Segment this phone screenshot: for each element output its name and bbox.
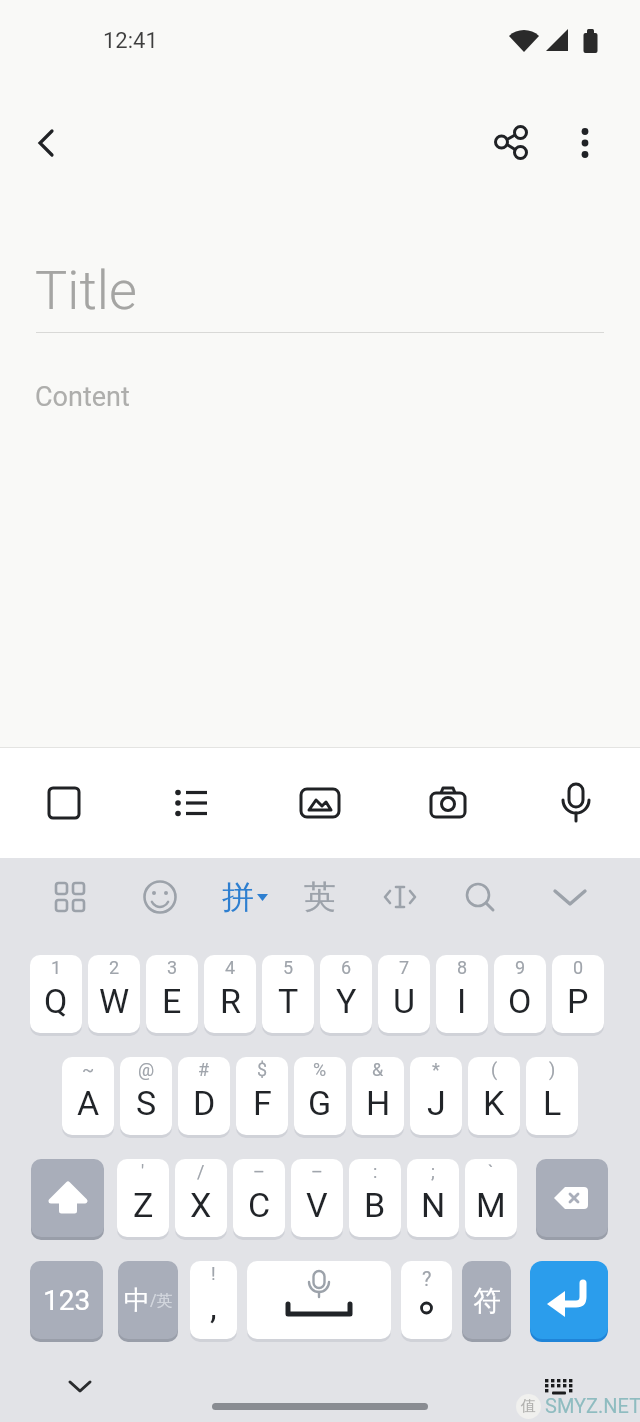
button[interactable]: L xyxy=(526,1057,578,1135)
button[interactable]: W xyxy=(88,955,140,1033)
staticText: Q xyxy=(44,981,68,1021)
staticText: 0 xyxy=(573,957,584,978)
button[interactable] xyxy=(247,1261,391,1339)
button[interactable]: E xyxy=(146,955,198,1033)
button[interactable] xyxy=(420,775,476,831)
button[interactable]: 123 xyxy=(30,1261,103,1339)
staticText: G xyxy=(308,1083,332,1123)
button[interactable]: G xyxy=(294,1057,346,1135)
staticText: P xyxy=(567,981,589,1021)
button[interactable] xyxy=(18,119,66,167)
button[interactable]: U xyxy=(378,955,430,1033)
staticText: 5 xyxy=(283,957,294,978)
staticText: T xyxy=(278,981,299,1021)
button[interactable]: 中 xyxy=(118,1261,178,1339)
button[interactable]: M xyxy=(465,1159,517,1237)
button[interactable] xyxy=(487,119,535,167)
button[interactable]: H xyxy=(352,1057,404,1135)
button[interactable]: ? xyxy=(401,1261,452,1339)
button[interactable]: I xyxy=(436,955,488,1033)
button[interactable] xyxy=(536,1159,608,1237)
button[interactable]: X xyxy=(175,1159,227,1237)
staticText: / xyxy=(197,1161,205,1182)
button[interactable] xyxy=(535,1367,583,1407)
staticText: ' xyxy=(141,1161,145,1182)
staticText: F xyxy=(253,1083,272,1123)
button[interactable]: , xyxy=(190,1261,237,1339)
button[interactable] xyxy=(46,873,94,921)
staticText: V xyxy=(306,1185,328,1225)
button[interactable]: C xyxy=(233,1159,285,1237)
staticText: ! xyxy=(211,1263,216,1284)
staticText: 中 xyxy=(124,1284,150,1317)
staticText: Z xyxy=(133,1185,154,1225)
staticText: 6 xyxy=(341,957,352,978)
button[interactable] xyxy=(548,775,604,831)
button[interactable] xyxy=(56,1362,104,1410)
staticText: Content xyxy=(35,381,130,413)
button[interactable]: O xyxy=(494,955,546,1033)
button[interactable]: Z xyxy=(117,1159,169,1237)
staticText: , xyxy=(210,1287,217,1327)
staticText: L xyxy=(543,1083,562,1123)
button[interactable]: 符 xyxy=(462,1261,511,1339)
staticText: ~ xyxy=(82,1059,95,1080)
staticText: E xyxy=(162,981,182,1021)
staticText: I xyxy=(457,981,467,1021)
button[interactable]: S xyxy=(120,1057,172,1135)
staticText: R xyxy=(220,981,241,1021)
button[interactable] xyxy=(546,873,594,921)
staticText: ) xyxy=(549,1059,556,1080)
staticText: 3 xyxy=(167,957,178,978)
staticText: 12:41 xyxy=(103,28,158,54)
button[interactable]: T xyxy=(262,955,314,1033)
staticText: ; xyxy=(431,1161,435,1182)
staticText: Title xyxy=(35,259,137,322)
staticText: 123 xyxy=(43,1284,91,1317)
staticText: M xyxy=(476,1185,506,1225)
button[interactable]: 英 xyxy=(296,873,344,921)
staticText: 9 xyxy=(515,957,526,978)
button[interactable]: F xyxy=(236,1057,288,1135)
button[interactable]: Y xyxy=(320,955,372,1033)
button[interactable]: Q xyxy=(30,955,82,1033)
button[interactable]: N xyxy=(407,1159,459,1237)
button[interactable] xyxy=(164,775,220,831)
staticText: % xyxy=(313,1059,327,1080)
staticText: * xyxy=(432,1059,440,1080)
button[interactable]: P xyxy=(552,955,604,1033)
button[interactable] xyxy=(292,775,348,831)
staticText: 拼 xyxy=(222,877,254,917)
staticText: @ xyxy=(138,1059,155,1080)
button[interactable] xyxy=(456,873,504,921)
staticText: C xyxy=(248,1185,271,1225)
button[interactable] xyxy=(36,775,92,831)
staticText: D xyxy=(193,1083,216,1123)
button[interactable]: K xyxy=(468,1057,520,1135)
button[interactable]: J xyxy=(410,1057,462,1135)
button[interactable] xyxy=(31,1159,104,1237)
staticText: X xyxy=(190,1185,212,1225)
staticText: H xyxy=(366,1083,391,1123)
button[interactable]: V xyxy=(291,1159,343,1237)
staticText: U xyxy=(393,981,416,1021)
staticText: 符 xyxy=(473,1283,501,1318)
button[interactable]: A xyxy=(62,1057,114,1135)
button[interactable]: B xyxy=(349,1159,401,1237)
staticText: J xyxy=(427,1083,446,1123)
staticText: 4 xyxy=(225,957,236,978)
staticText: ` xyxy=(488,1161,494,1182)
button[interactable] xyxy=(136,873,184,921)
staticText: : xyxy=(373,1161,378,1182)
button[interactable] xyxy=(376,873,424,921)
button[interactable]: R xyxy=(204,955,256,1033)
button[interactable] xyxy=(530,1261,608,1339)
staticText: & xyxy=(372,1059,384,1080)
staticText: Y xyxy=(336,981,357,1021)
button[interactable] xyxy=(561,119,609,167)
staticText: ( xyxy=(491,1059,498,1080)
button[interactable]: D xyxy=(178,1057,230,1135)
staticText: 2 xyxy=(109,957,120,978)
button[interactable]: 拼 xyxy=(216,873,274,921)
staticText: N xyxy=(421,1185,446,1225)
